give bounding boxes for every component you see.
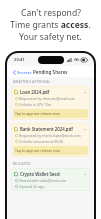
staticText: Time grants access. (10, 19, 91, 31)
staticText: Shared with sofia@trust.com (19, 178, 67, 183)
button[interactable]: Tap to approve release now (13, 109, 88, 118)
staticText: RELEASED (13, 161, 31, 166)
staticText: Requested by maria.lopez@work.com (19, 133, 81, 138)
staticText: Crypto Wallet Seed (20, 171, 82, 177)
button[interactable]: Crypto Wallet Seed (11, 168, 90, 191)
staticText: Tap to approve release now (15, 148, 61, 153)
button[interactable]: Secrets (11, 68, 34, 76)
staticText: Bank Statement 2024.pdf (20, 126, 82, 132)
staticText: Can't respond? (21, 7, 81, 19)
staticText: Tap to approve release now (15, 111, 61, 116)
button[interactable]: More options (82, 127, 87, 132)
staticText: Loan 2024.pdf (20, 89, 82, 95)
staticText: Pending Shares (33, 69, 68, 75)
button[interactable]: More options (82, 172, 87, 177)
staticText: 20:41 (14, 57, 25, 63)
staticText: Unlocks in 47h 12m (19, 102, 52, 107)
staticText: Your safety net. (19, 31, 82, 43)
staticText: Unlocks tomorrow at 09:30 (19, 139, 64, 144)
button[interactable]: Bank Statement 2024.pdf (11, 123, 90, 157)
button[interactable]: Loan 2024.pdf (11, 86, 90, 120)
staticText: Requested by chen.wei@mail.com (19, 96, 75, 101)
staticText: Opened 2h ago (19, 184, 45, 189)
button[interactable]: More options (82, 90, 87, 95)
staticText: Secrets (17, 69, 32, 75)
button[interactable]: Tap to approve release now (13, 146, 88, 155)
staticText: AWAITING APPROVAL (13, 79, 51, 84)
